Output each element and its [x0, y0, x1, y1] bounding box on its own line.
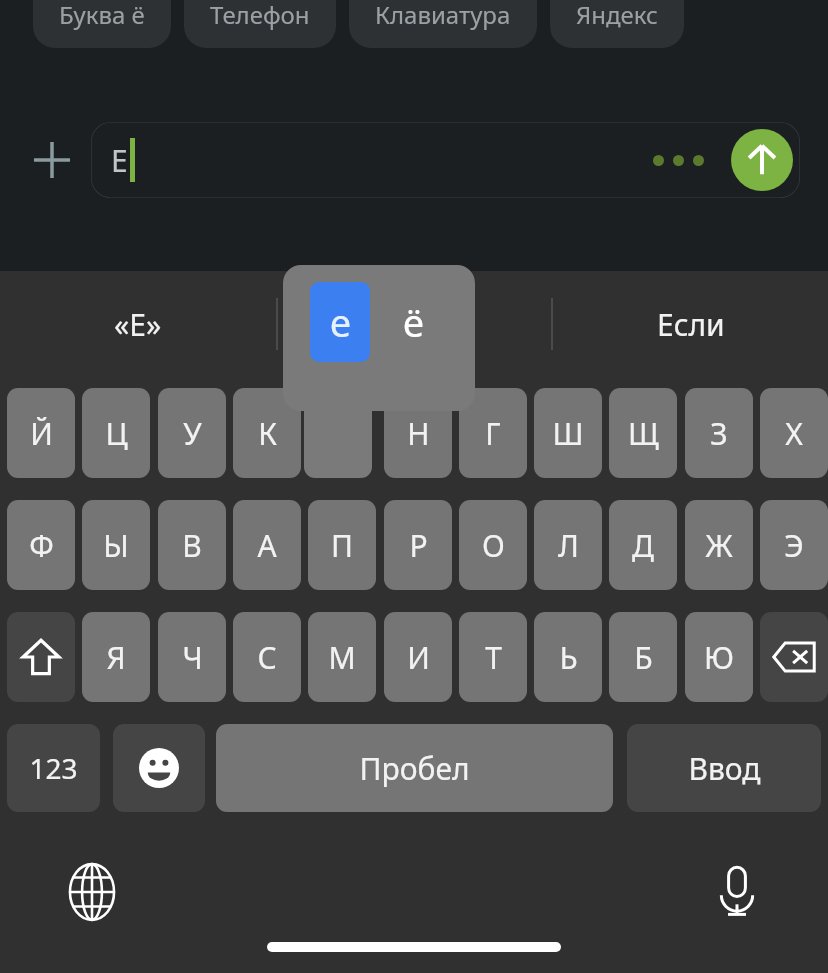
button[interactable]: П [308, 500, 376, 590]
staticText: Э [784, 525, 804, 566]
staticText: Ф [29, 525, 54, 566]
button[interactable]: Й [7, 388, 75, 478]
staticText: П [331, 525, 353, 566]
button[interactable]: Ш [534, 388, 602, 478]
staticText: Пробел [359, 748, 470, 789]
staticText: ё [403, 296, 424, 348]
staticText: Телефон [210, 0, 310, 31]
button[interactable]: Ф [7, 500, 75, 590]
staticText: е [330, 296, 351, 348]
staticText: «Е» [114, 304, 162, 345]
staticText: Й [30, 413, 53, 454]
button[interactable]: Т [459, 612, 527, 702]
button[interactable]: У [158, 388, 226, 478]
staticText: Х [785, 413, 803, 454]
button[interactable]: В [158, 500, 226, 590]
staticText: Если [657, 304, 725, 345]
staticText: Клавиатура [375, 0, 511, 31]
staticText: Щ [628, 413, 659, 454]
staticText: В [182, 525, 202, 566]
button[interactable]: Ц [82, 388, 150, 478]
button[interactable]: Ч [158, 612, 226, 702]
staticText: Буква ё [59, 0, 145, 31]
button[interactable]: «Е» [0, 271, 276, 378]
button[interactable]: Е [91, 122, 800, 198]
button[interactable]: Я [82, 612, 150, 702]
button[interactable]: Б [609, 612, 677, 702]
staticText: Ю [704, 637, 734, 678]
button[interactable]: Э [760, 500, 828, 590]
staticText: У [183, 413, 202, 454]
staticText: К [258, 413, 277, 454]
staticText: Ь [559, 637, 578, 678]
staticText: С [257, 637, 277, 678]
button[interactable]: 123 [7, 724, 100, 812]
staticText: И [407, 637, 430, 678]
button[interactable]: Ввод [627, 724, 821, 812]
button[interactable]: М [308, 612, 376, 702]
button[interactable]: Voice input [697, 852, 777, 932]
staticText: Д [632, 525, 654, 566]
button[interactable]: Х [760, 388, 828, 478]
button[interactable]: С [233, 612, 301, 702]
button[interactable]: Н [384, 388, 452, 478]
staticText: Р [409, 525, 428, 566]
staticText: Ввод [688, 748, 761, 789]
staticText: Ж [705, 525, 733, 566]
button[interactable]: К [233, 388, 301, 478]
button[interactable]: Р [384, 500, 452, 590]
staticText: Т [485, 637, 502, 678]
button[interactable]: Ю [685, 612, 753, 702]
button[interactable]: Буква ё [33, 0, 171, 48]
button[interactable]: Г [459, 388, 527, 478]
button[interactable]: З [685, 388, 753, 478]
button[interactable]: Ы [82, 500, 150, 590]
button[interactable]: О [459, 500, 527, 590]
staticText: Л [558, 525, 579, 566]
button[interactable]: Щ [609, 388, 677, 478]
staticText: З [710, 413, 728, 454]
button[interactable]: ё [383, 282, 443, 362]
button[interactable]: И [384, 612, 452, 702]
button[interactable]: Shift [7, 612, 75, 702]
button[interactable]: Emoji [113, 724, 205, 812]
button[interactable]: Л [534, 500, 602, 590]
staticText: Ш [552, 413, 584, 454]
staticText: Ц [105, 413, 128, 454]
staticText: Ы [103, 525, 129, 566]
button[interactable]: Add attachment [22, 130, 82, 190]
staticText: А [257, 525, 277, 566]
button[interactable] [276, 271, 551, 378]
button[interactable]: Ж [685, 500, 753, 590]
button[interactable]: е [310, 282, 370, 362]
button[interactable]: Д [609, 500, 677, 590]
staticText: М [328, 637, 356, 678]
button[interactable]: Яндекс [550, 0, 684, 48]
staticText: 123 [29, 749, 78, 787]
staticText: Я [106, 637, 126, 678]
button[interactable]: Backspace [760, 612, 828, 702]
button[interactable]: Клавиатура [349, 0, 537, 48]
staticText: Яндекс [576, 0, 658, 31]
button[interactable]: Change language [52, 852, 132, 932]
staticText: Г [485, 413, 501, 454]
button[interactable]: Send [731, 129, 793, 191]
button[interactable]: Ь [534, 612, 602, 702]
staticText: Ч [182, 637, 203, 678]
button[interactable]: Телефон [184, 0, 336, 48]
button[interactable]: А [233, 500, 301, 590]
staticText: Б [634, 637, 653, 678]
button[interactable]: Пробел [216, 724, 613, 812]
staticText: Н [407, 413, 430, 454]
button[interactable]: Если [553, 271, 828, 378]
staticText: О [482, 525, 505, 566]
staticText: Е [111, 140, 128, 181]
